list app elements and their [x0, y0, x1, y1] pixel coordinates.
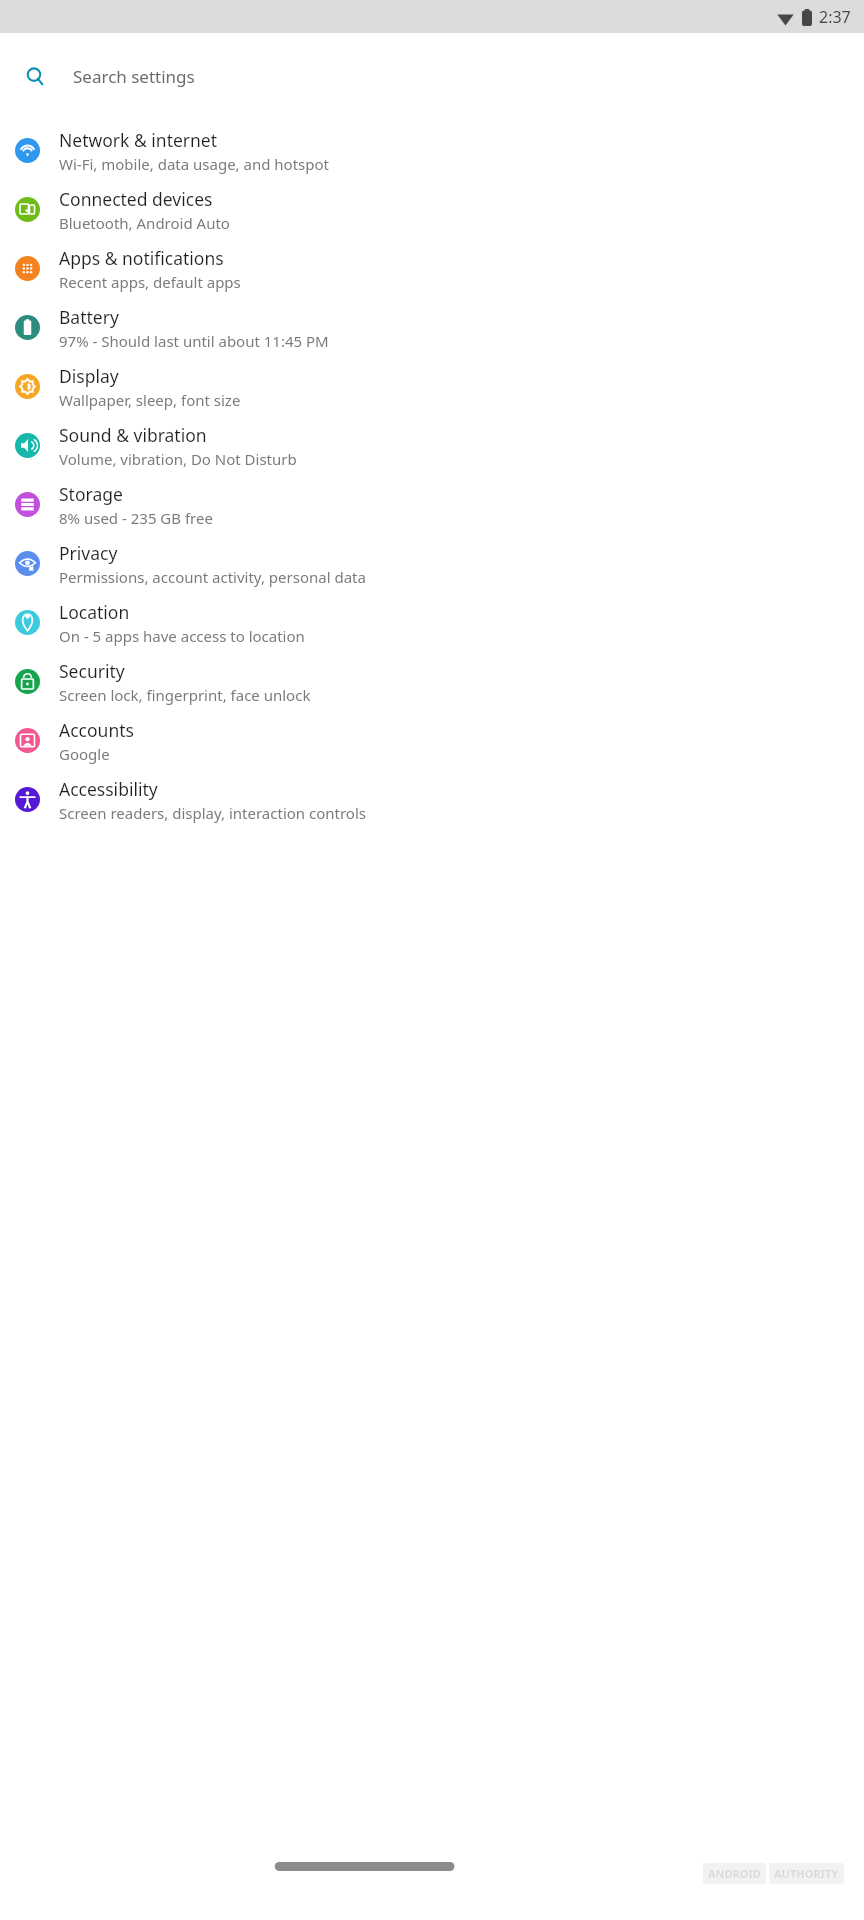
staticText: Display — [59, 364, 119, 388]
staticText: Location — [59, 600, 130, 624]
staticText: Accounts — [59, 718, 134, 742]
staticText: Sound & vibration — [59, 423, 207, 447]
staticText: Storage — [59, 482, 123, 506]
staticText: Privacy — [59, 541, 118, 565]
button[interactable]: Privacy — [0, 534, 864, 593]
button[interactable]: Network & internet — [0, 121, 864, 180]
staticText: 8% used - 235 GB free — [59, 508, 213, 528]
other: Search — [26, 67, 45, 86]
staticText: Screen lock, fingerprint, face unlock — [59, 685, 311, 705]
button[interactable]: Battery — [0, 298, 864, 357]
staticText: 97% - Should last until about 11:45 PM — [59, 331, 329, 351]
staticText: ANDROID — [708, 1866, 761, 1881]
staticText: Bluetooth, Android Auto — [59, 213, 230, 233]
staticText: On - 5 apps have access to location — [59, 626, 305, 646]
staticText: Screen readers, display, interaction con… — [59, 803, 366, 823]
button[interactable]: Search — [11, 56, 853, 96]
staticText: Permissions, account activity, personal … — [59, 567, 366, 587]
staticText: Wi-Fi, mobile, data usage, and hotspot — [59, 154, 329, 174]
button[interactable]: Connected devices — [0, 180, 864, 239]
staticText: Wallpaper, sleep, font size — [59, 390, 241, 410]
button[interactable]: Apps & notifications — [0, 239, 864, 298]
button[interactable]: Security — [0, 652, 864, 711]
staticText: Search settings — [73, 65, 195, 88]
staticText: Battery — [59, 305, 119, 329]
staticText: Network & internet — [59, 128, 218, 152]
staticText: Apps & notifications — [59, 246, 224, 270]
staticText: Connected devices — [59, 187, 213, 211]
button[interactable]: Accounts — [0, 711, 864, 770]
button[interactable]: Sound & vibration — [0, 416, 864, 475]
staticText: Security — [59, 659, 125, 683]
staticText: Recent apps, default apps — [59, 272, 241, 292]
staticText: 2:37 — [819, 6, 851, 28]
staticText: Volume, vibration, Do Not Disturb — [59, 449, 297, 469]
button[interactable]: Location — [0, 593, 864, 652]
button[interactable]: Display — [0, 357, 864, 416]
staticText: AUTHORITY — [774, 1866, 839, 1881]
button[interactable]: Accessibility — [0, 770, 864, 829]
staticText: Google — [59, 744, 110, 764]
staticText: Accessibility — [59, 777, 158, 801]
button[interactable]: Storage — [0, 475, 864, 534]
